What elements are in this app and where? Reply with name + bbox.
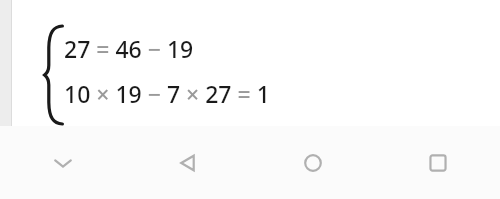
button[interactable]: Recents xyxy=(375,126,500,199)
staticText: 27 = 46 − 19 xyxy=(64,33,194,64)
staticText: 10 × 19 − 7 × 27 = 1 xyxy=(64,78,270,109)
button[interactable]: Back xyxy=(125,126,250,199)
button[interactable]: Hide keyboard xyxy=(0,126,125,199)
button[interactable]: Home xyxy=(250,126,375,199)
